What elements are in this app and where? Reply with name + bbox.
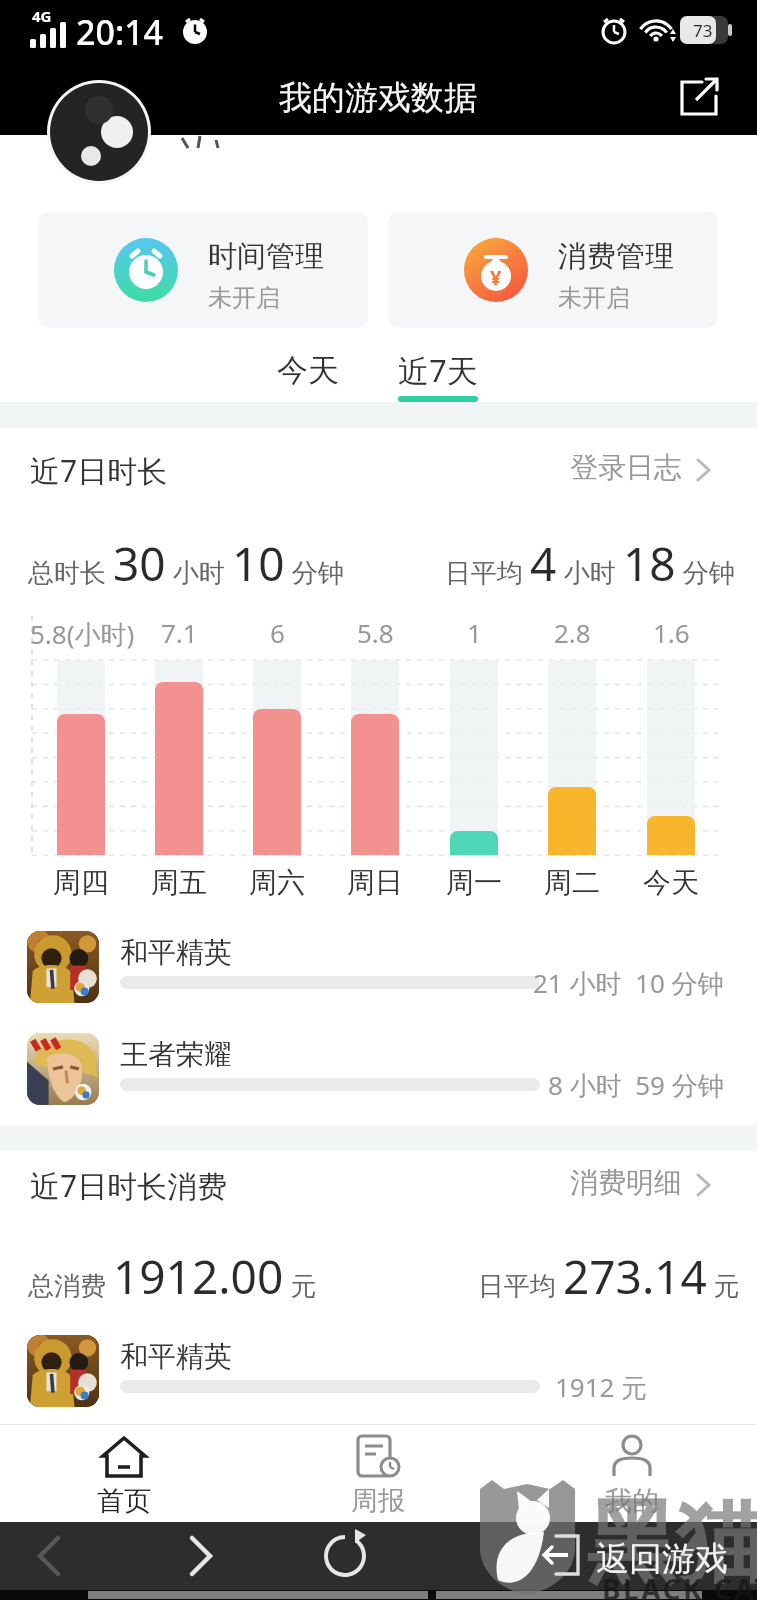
staticText: 周二 [544,865,600,900]
button[interactable]: 消费明细 [570,1160,730,1200]
staticText: 未开启 [208,283,280,313]
staticText: 1912.00 [113,1245,284,1308]
staticText: 消费明细 [570,1165,682,1200]
staticText: 登录日志 [570,450,682,485]
staticText: 王者荣耀 [120,1037,232,1072]
staticText: 时间管理 [208,238,324,275]
staticText: 元 [284,1267,317,1303]
button[interactable]: 和平精英 [0,925,757,1025]
button[interactable]: 周报 [318,1426,438,1522]
staticText: 5.8 [357,615,394,649]
staticText: 总消费 [28,1267,113,1303]
button[interactable]: 近7天 [388,340,488,400]
staticText: 周日 [347,865,403,900]
staticText: 消费管理 [558,238,674,275]
staticText: 73 [693,19,713,42]
button[interactable] [170,1530,230,1582]
staticText: 我的游戏数据 [279,77,477,119]
staticText: 18 [623,532,676,595]
button[interactable]: 登录日志 [570,445,730,485]
staticText: 21 小时 10 分钟 [533,965,724,1001]
staticText: 和平精英 [120,1339,232,1374]
button[interactable]: 我的 [572,1426,692,1522]
staticText: 周四 [53,865,109,900]
staticText: 1912 元 [555,1369,648,1405]
staticText: 5.8(小时) [30,616,135,652]
staticText: 20:14 [76,9,164,55]
staticText: 2.8 [554,615,591,649]
staticText: 10 [232,532,285,595]
staticText: 周报 [351,1484,405,1518]
staticText: 近7日时长消费 [30,1165,228,1206]
staticText: 4G [32,6,52,26]
button[interactable] [520,1524,750,1588]
button[interactable]: ¥ [388,212,718,328]
staticText: 6 [270,615,285,649]
staticText: 周六 [249,865,305,900]
button[interactable]: 时间管理 [38,212,368,328]
staticText: 日平均 [478,1267,563,1303]
staticText: 7.1 [161,615,198,649]
button[interactable] [20,1530,80,1582]
staticText: 1.6 [653,615,690,649]
staticText: 元 [707,1267,740,1303]
staticText: 273.14 [563,1245,707,1308]
staticText: 8 小时 59 分钟 [548,1067,724,1103]
staticText: 小时 [557,554,623,590]
staticText: 分钟 [676,554,735,590]
staticText: 近7天 [398,349,478,391]
staticText: 和平精英 [120,935,232,970]
staticText: 黑猫 [586,1486,757,1599]
staticText: BLACK CAT [602,1570,757,1600]
staticText: 总时长 [28,554,113,590]
staticText: 1 [467,615,482,649]
staticText: 日平均 [445,554,530,590]
staticText: 首页 [97,1484,151,1518]
staticText: 今天 [277,351,339,390]
staticText: 30 [113,532,166,595]
staticText: 周一 [446,865,502,900]
button[interactable]: 王者荣耀 [0,1025,757,1125]
button[interactable] [316,1528,376,1584]
button[interactable]: 首页 [64,1426,184,1522]
staticText: 周五 [151,865,207,900]
staticText: 4 [530,532,557,595]
button[interactable]: 今天 [258,340,358,400]
staticText: 今天 [643,865,699,900]
staticText: 返回游戏 [596,1538,728,1580]
staticText: 未开启 [558,283,630,313]
staticText: 分钟 [285,554,344,590]
button[interactable]: 和平精英 [0,1330,757,1426]
staticText: 我的 [605,1484,659,1518]
staticText: 小时 [166,554,232,590]
button[interactable] [672,74,728,124]
staticText: 近7日时长 [30,450,168,491]
staticText: ¥ [490,264,502,290]
